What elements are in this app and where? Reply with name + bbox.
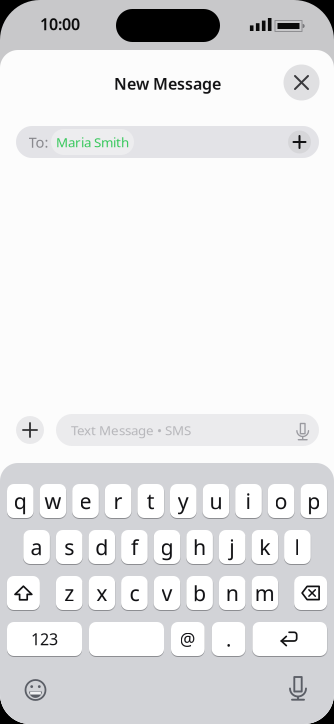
staticText: a [31,533,43,561]
button[interactable]: Space [89,622,164,656]
staticText: q [14,487,27,515]
staticText: l [294,533,300,561]
button[interactable]: Delete [294,576,327,610]
staticText: n [226,579,239,607]
button[interactable]: q [7,484,34,518]
button[interactable]: Add attachment [16,416,44,444]
button[interactable]: Add Contact [288,130,311,153]
button[interactable]: Text Message field [56,414,319,446]
button[interactable]: f [121,530,148,564]
staticText: v [161,579,172,607]
button[interactable]: Dictation [285,675,311,705]
staticText: u [209,487,222,515]
button[interactable]: y [170,484,197,518]
button[interactable]: i [235,484,262,518]
staticText: z [64,579,74,607]
staticText: d [95,533,108,561]
staticText: r [114,487,123,515]
staticText: g [160,533,173,561]
button[interactable]: v [154,576,180,610]
staticText: 10:00 [40,13,80,35]
button[interactable]: s [56,530,82,564]
button[interactable]: r [105,484,131,518]
button[interactable]: Close [283,64,319,100]
button[interactable]: n [219,576,245,610]
button[interactable]: 123 [7,622,82,656]
staticText: o [275,487,288,515]
staticText: x [96,579,107,607]
button[interactable]: x [88,576,115,610]
button[interactable]: Maria Smith [51,129,134,155]
staticText: t [147,487,155,515]
button[interactable]: a [23,530,50,564]
staticText: y [178,487,189,515]
button[interactable]: z [56,576,82,610]
staticText: 123 [31,628,58,650]
button[interactable]: d [88,530,115,564]
staticText: w [44,487,61,515]
staticText: @ [180,627,196,650]
staticText: Text Message • SMS [71,421,191,439]
staticText: p [307,487,320,515]
staticText: j [229,533,235,561]
staticText: c [129,579,139,607]
staticText: f [131,533,138,561]
staticText: Maria Smith [56,133,129,151]
button[interactable]: e [72,484,99,518]
staticText: To: [28,132,48,152]
button[interactable]: Return [252,622,327,656]
button[interactable]: k [251,530,278,564]
staticText: b [193,579,206,607]
button[interactable]: g [154,530,180,564]
staticText: e [79,487,91,515]
button[interactable]: o [268,484,294,518]
button[interactable]: To: [16,126,319,158]
staticText: . [226,626,231,652]
staticText: k [259,533,270,561]
staticText: h [193,533,206,561]
button[interactable]: u [203,484,229,518]
button[interactable]: c [121,576,148,610]
staticText: s [64,533,74,561]
button[interactable]: h [186,530,213,564]
button[interactable]: p [300,484,327,518]
button[interactable]: . [212,622,245,656]
button[interactable]: @ [171,622,205,656]
button[interactable]: t [137,484,164,518]
button[interactable]: b [186,576,213,610]
staticText: New Message [114,73,221,94]
button[interactable]: Shift [7,576,40,610]
button[interactable]: w [40,484,66,518]
staticText: i [245,487,251,515]
button[interactable]: j [219,530,245,564]
button[interactable]: Emoji [23,678,47,702]
button[interactable]: l [284,530,311,564]
button[interactable]: m [251,576,278,610]
staticText: m [255,579,275,607]
